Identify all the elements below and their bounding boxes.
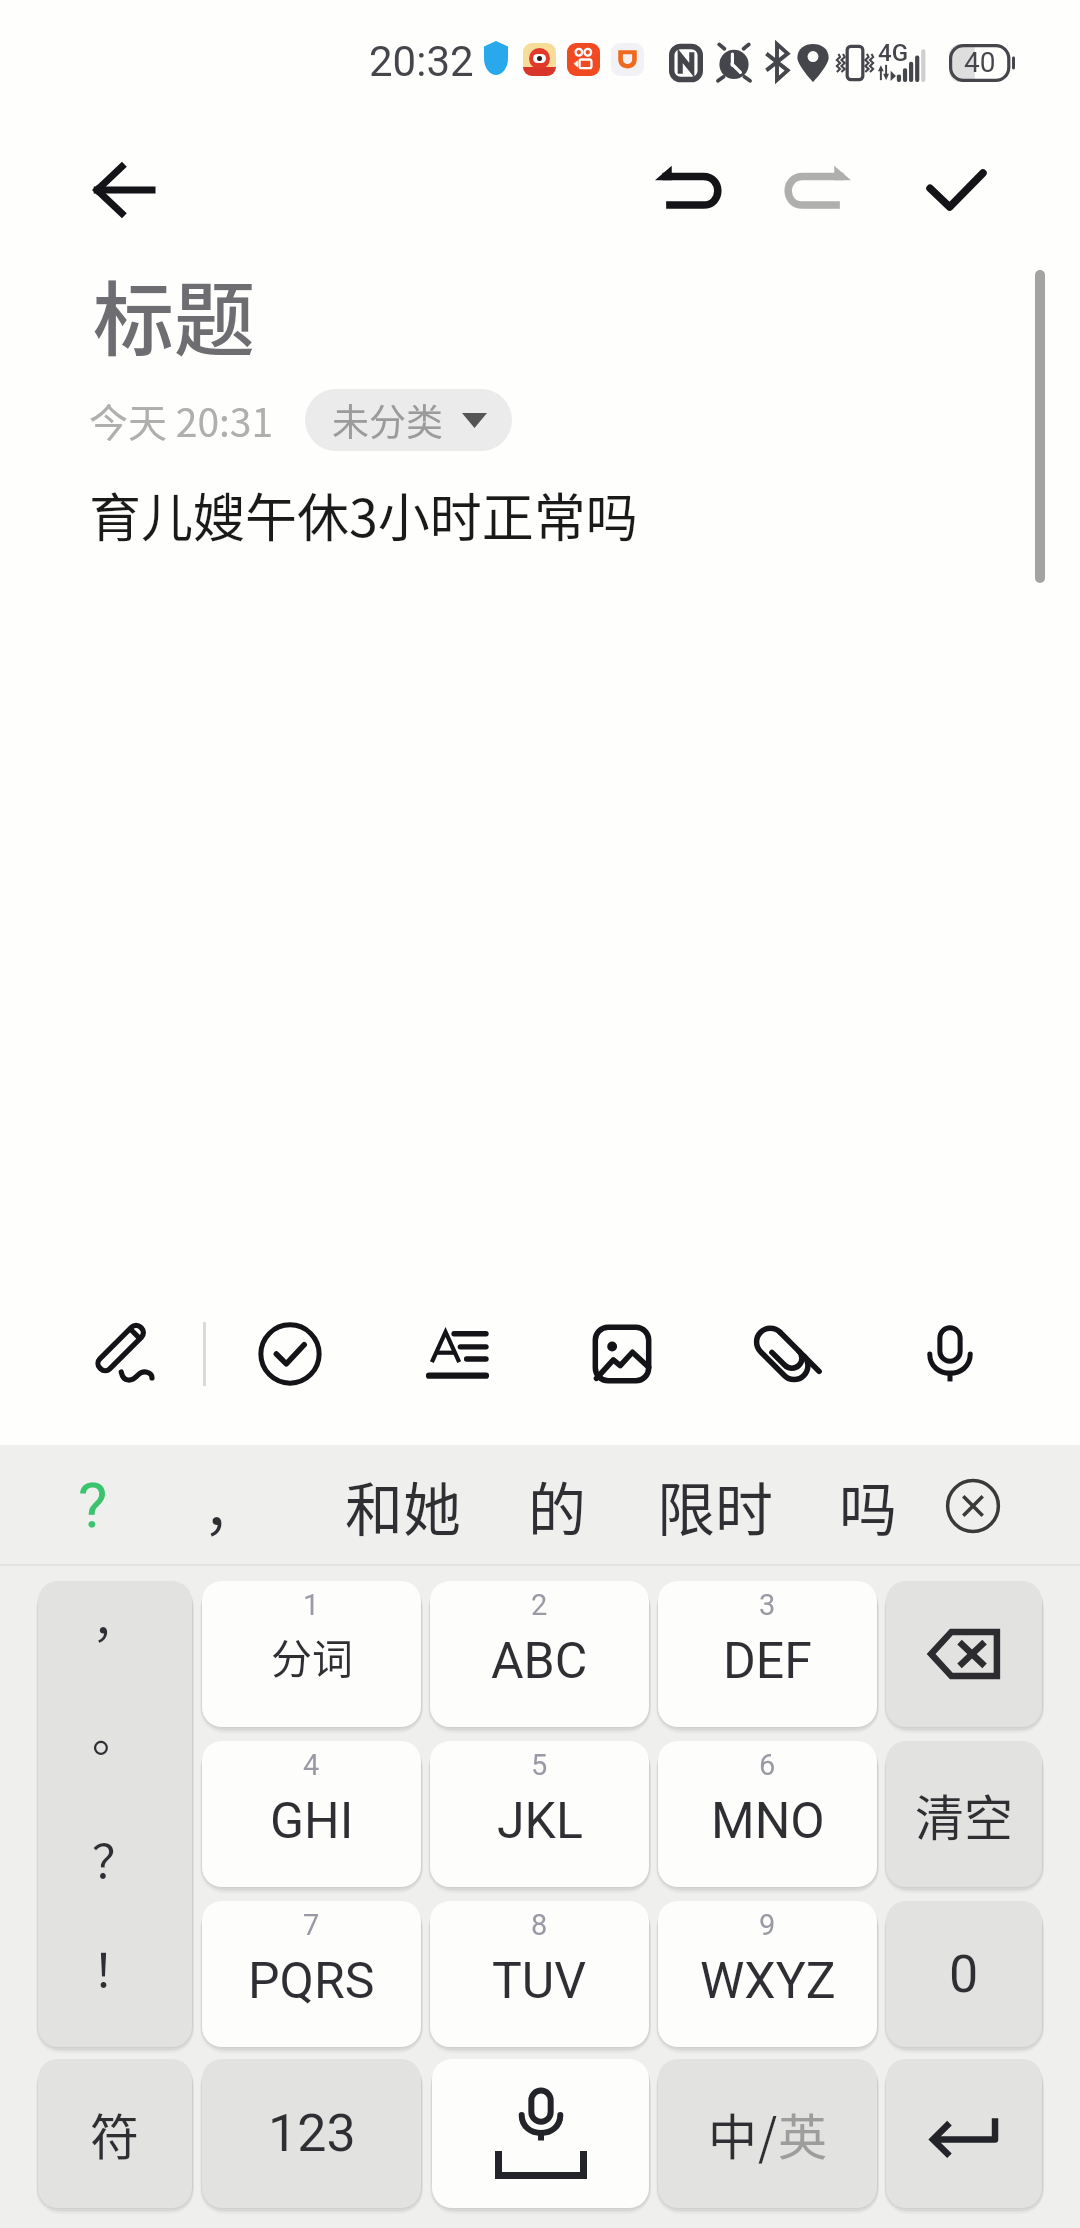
button[interactable]: 0	[886, 1901, 1042, 2047]
staticText: 9	[759, 1908, 776, 1942]
button[interactable]: 8	[430, 1901, 649, 2047]
staticText: ！	[92, 1934, 138, 2000]
staticText: 7	[303, 1908, 320, 1942]
button[interactable]: Done	[896, 130, 1016, 250]
staticText: GHI	[270, 1792, 354, 1851]
button[interactable]	[432, 2059, 649, 2208]
button[interactable]: 和她	[342, 1445, 464, 1566]
button[interactable]: 1	[202, 1581, 421, 1727]
staticText: 20:32	[369, 37, 474, 86]
staticText: WXYZ	[700, 1952, 836, 2011]
staticText: 40	[964, 46, 996, 79]
button[interactable]: 2	[430, 1581, 649, 1727]
staticText: 今天 20:31	[89, 392, 274, 448]
button[interactable]: 7	[202, 1901, 421, 2047]
button[interactable]: ，	[38, 1581, 192, 2047]
staticText: 清空	[915, 1779, 1014, 1850]
staticText: /	[758, 2098, 778, 2169]
staticText: 符	[90, 2098, 140, 2169]
staticText: PQRS	[248, 1952, 375, 2011]
button[interactable]: Voice	[898, 1302, 1002, 1406]
staticText: ABC	[491, 1632, 588, 1691]
button[interactable]: Close candidates	[938, 1471, 1008, 1541]
staticText: DEF	[723, 1632, 812, 1691]
button[interactable]	[886, 1581, 1042, 1727]
staticText: 6	[759, 1748, 776, 1782]
button[interactable]: 中	[658, 2059, 877, 2208]
staticText: 4G	[878, 39, 908, 67]
staticText: 吗	[839, 1464, 898, 1548]
staticText: 3	[759, 1588, 776, 1622]
button[interactable]: Checklist	[238, 1302, 342, 1406]
button[interactable]: 5	[430, 1741, 649, 1887]
staticText: 2	[531, 1588, 548, 1622]
staticText: 未分类	[332, 393, 443, 447]
staticText: 限时	[657, 1464, 774, 1548]
staticText: 8	[531, 1908, 548, 1942]
staticText: MNO	[711, 1792, 825, 1851]
staticText: 英	[778, 2098, 828, 2169]
staticText: 标题	[93, 255, 256, 372]
button[interactable]: 未分类	[305, 389, 512, 451]
button[interactable]: 吗	[811, 1445, 925, 1566]
staticText: ，	[92, 1584, 138, 1650]
button[interactable]: ?	[38, 1445, 148, 1566]
staticText: ?	[78, 1469, 108, 1542]
button[interactable]: ，	[176, 1445, 286, 1566]
button[interactable]: Back	[63, 130, 183, 250]
staticText: 1	[303, 1588, 320, 1622]
button[interactable]: 123	[202, 2059, 421, 2208]
button[interactable]: 的	[500, 1445, 614, 1566]
button[interactable]: 符	[38, 2059, 192, 2208]
staticText: 。	[92, 1698, 138, 1764]
button[interactable]: 6	[658, 1741, 877, 1887]
button[interactable]	[886, 2059, 1042, 2208]
button[interactable]: Image	[570, 1302, 674, 1406]
button[interactable]: 9	[658, 1901, 877, 2047]
button[interactable]: 4	[202, 1741, 421, 1887]
button[interactable]: Text style	[405, 1302, 509, 1406]
staticText: ，	[203, 1465, 259, 1546]
staticText: 0	[949, 1944, 979, 2005]
button[interactable]: Attachment	[734, 1302, 838, 1406]
staticText: 育儿嫂午休3小时正常吗	[89, 477, 638, 552]
staticText: 的	[528, 1464, 587, 1548]
staticText: JKL	[497, 1792, 583, 1851]
staticText: 123	[268, 2103, 356, 2164]
staticText: 分词	[271, 1626, 353, 1685]
staticText: 5	[531, 1748, 548, 1782]
button[interactable]: Undo	[626, 130, 746, 250]
staticText: 中	[708, 2098, 758, 2169]
button[interactable]: 限时	[654, 1445, 776, 1566]
staticText: 4	[303, 1748, 320, 1782]
staticText: TUV	[492, 1952, 587, 2011]
button[interactable]: 3	[658, 1581, 877, 1727]
button[interactable]: Redo	[760, 130, 880, 250]
button[interactable]: Handwriting	[73, 1302, 177, 1406]
staticText: ？	[92, 1825, 138, 1891]
staticText: 和她	[345, 1464, 462, 1548]
button[interactable]: 清空	[886, 1741, 1042, 1887]
